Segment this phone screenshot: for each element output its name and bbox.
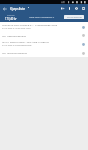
staticText: 24.12.2020 kl Undersøkte Dette [2, 44, 32, 47]
button[interactable]: Handlekurv [80, 32, 86, 38]
button[interactable]: Handlekurv [80, 24, 86, 30]
staticText: 24.12.2020 kl 14:00 Sone Nord [2, 27, 31, 30]
staticText: VIN Ukentlig Bestille [2, 34, 26, 37]
button[interactable]: VIS HANDLEKURV [64, 15, 84, 19]
button[interactable]: Handlekurv [80, 50, 86, 56]
staticText: VIS HANDLEKURV [67, 16, 82, 18]
staticText: Antall varer i handlekurv: 4 [29, 16, 55, 19]
staticText: VIN Mcintosh Bestille [2, 51, 27, 54]
staticText: Kjøpsliste [10, 6, 26, 11]
button[interactable]: VIN Ukentlig Bestille [0, 31, 88, 39]
staticText: MAN1 FERSKVARER - 48% MER LAGRING [2, 40, 49, 43]
button[interactable]: Tilbake [0, 4, 10, 13]
staticText: Totalsum [7, 14, 15, 16]
staticText: LIGNELSE FOR VARMER 01 - LAGERORDRE 6785 [2, 23, 58, 26]
button[interactable]: Logg ut [59, 4, 66, 13]
staticText: 173,40 kr [5, 17, 17, 21]
button[interactable]: Meny [80, 4, 87, 13]
button[interactable]: Dokument [66, 4, 73, 13]
button[interactable]: VIN Mcintosh Bestille [0, 48, 88, 57]
button[interactable]: MAN1 FERSKVARER - 48% MER LAGRING [0, 39, 88, 48]
button[interactable]: LIGNELSE FOR VARMER 01 - LAGERORDRE 6785 [0, 22, 88, 31]
button[interactable]: Handlekurv [80, 41, 86, 47]
button[interactable]: Innstillinger [73, 4, 80, 13]
